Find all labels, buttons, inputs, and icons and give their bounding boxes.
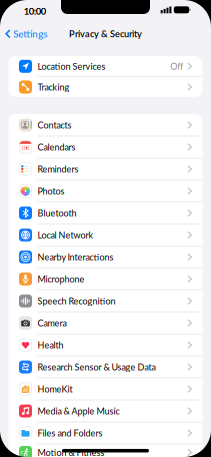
button[interactable]: Nearby Interactions [8, 246, 202, 268]
button[interactable]: Bluetooth [8, 202, 202, 224]
button[interactable]: Reminders [8, 158, 202, 180]
button[interactable]: Research Sensor & Usage Data [8, 356, 202, 378]
button[interactable]: Camera [8, 312, 202, 334]
staticText: Reminders [37, 164, 78, 174]
staticText: Photos [37, 186, 64, 196]
button[interactable]: Photos [8, 180, 202, 202]
staticText: Media & Apple Music [37, 406, 119, 416]
staticText: 10:00 [24, 5, 46, 17]
button[interactable]: Local Network [8, 224, 202, 246]
staticText: Speech Recognition [37, 296, 115, 306]
button[interactable]: Contacts [8, 114, 202, 136]
staticText: Health [37, 340, 63, 350]
staticText: Local Network [37, 230, 93, 240]
staticText: HomeKit [37, 384, 72, 394]
button[interactable]: Microphone [8, 268, 202, 290]
staticText: Research Sensor & Usage Data [37, 362, 155, 372]
staticText: Bluetooth [37, 208, 76, 218]
staticText: Tracking [37, 82, 69, 92]
button[interactable]: Health [8, 334, 202, 356]
staticText: Files and Folders [37, 428, 102, 438]
button[interactable]: Media & Apple Music [8, 400, 202, 422]
button[interactable]: Calendars [8, 136, 202, 158]
button[interactable]: Tracking [8, 76, 202, 98]
staticText: Microphone [37, 274, 84, 284]
staticText: Contacts [37, 120, 71, 130]
staticText: Nearby Interactions [37, 252, 113, 262]
staticText: Off [170, 61, 183, 72]
button[interactable]: Motion & Fitness [8, 441, 202, 457]
staticText: Motion & Fitness [37, 447, 104, 457]
staticText: Settings [13, 28, 47, 40]
staticText: Privacy & Security [69, 28, 142, 39]
staticText: Camera [37, 318, 66, 328]
staticText: Calendars [37, 142, 75, 152]
button[interactable]: Location Services [8, 55, 202, 77]
staticText: Location Services [37, 61, 105, 72]
button[interactable]: HomeKit [8, 378, 202, 400]
button[interactable]: Back to Settings [5, 26, 75, 42]
button[interactable]: Speech Recognition [8, 290, 202, 312]
button[interactable]: Files and Folders [8, 422, 202, 444]
